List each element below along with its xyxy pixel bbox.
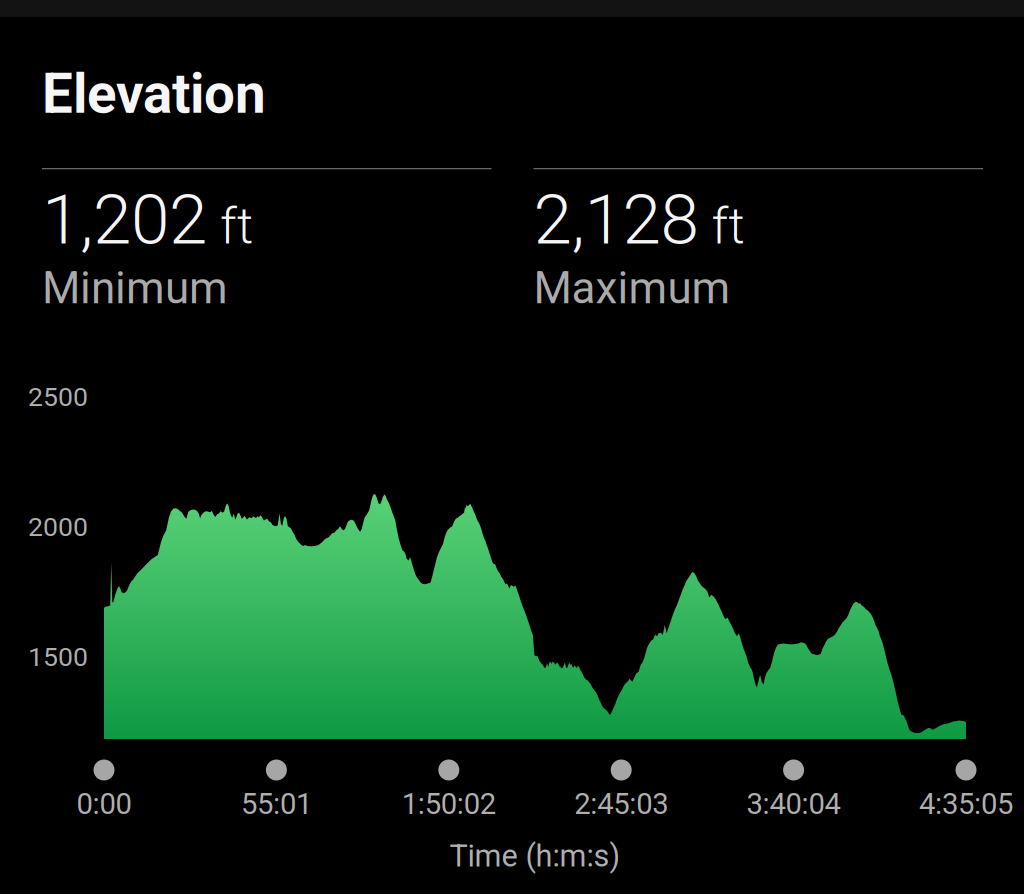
staticText: 55:01 bbox=[241, 787, 312, 821]
button[interactable]: 1,202 bbox=[42, 168, 491, 314]
staticText: 3:40:04 bbox=[747, 787, 841, 821]
staticText: 1500 bbox=[28, 641, 88, 673]
staticText: Minimum bbox=[42, 262, 228, 314]
staticText: Time (h:m:s) bbox=[449, 838, 620, 874]
staticText: Elevation bbox=[42, 62, 266, 126]
staticText: 2,128 bbox=[533, 179, 698, 260]
staticText: Maximum bbox=[533, 262, 730, 314]
staticText: ft bbox=[220, 197, 253, 256]
staticText: 4:35:05 bbox=[919, 787, 1013, 821]
staticText: 1,202 bbox=[42, 179, 207, 260]
staticText: 2000 bbox=[28, 511, 88, 543]
staticText: ft bbox=[711, 197, 744, 256]
staticText: 2:45:03 bbox=[574, 787, 668, 821]
staticText: 1:50:02 bbox=[402, 787, 496, 821]
button[interactable]: 2,128 bbox=[533, 168, 983, 314]
staticText: 2500 bbox=[28, 381, 88, 413]
staticText: 0:00 bbox=[76, 787, 131, 821]
